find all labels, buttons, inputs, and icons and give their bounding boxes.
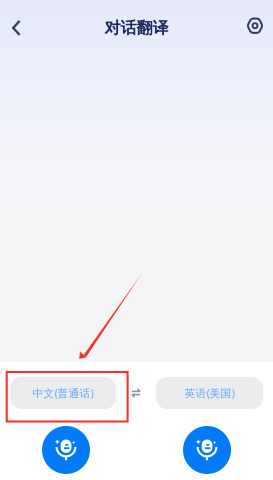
staticText: 对话翻译 (104, 18, 168, 38)
button[interactable]: 英语(美国) (156, 377, 263, 409)
button[interactable]: 中文(普通话) (10, 377, 116, 409)
staticText: 中文(普通话) (32, 386, 93, 400)
button[interactable]: Settings (236, 4, 273, 48)
button[interactable]: Speak English (183, 426, 231, 474)
button[interactable]: Back (0, 6, 33, 50)
staticText: 英语(美国) (184, 386, 234, 400)
button[interactable]: Speak Chinese (42, 426, 90, 474)
